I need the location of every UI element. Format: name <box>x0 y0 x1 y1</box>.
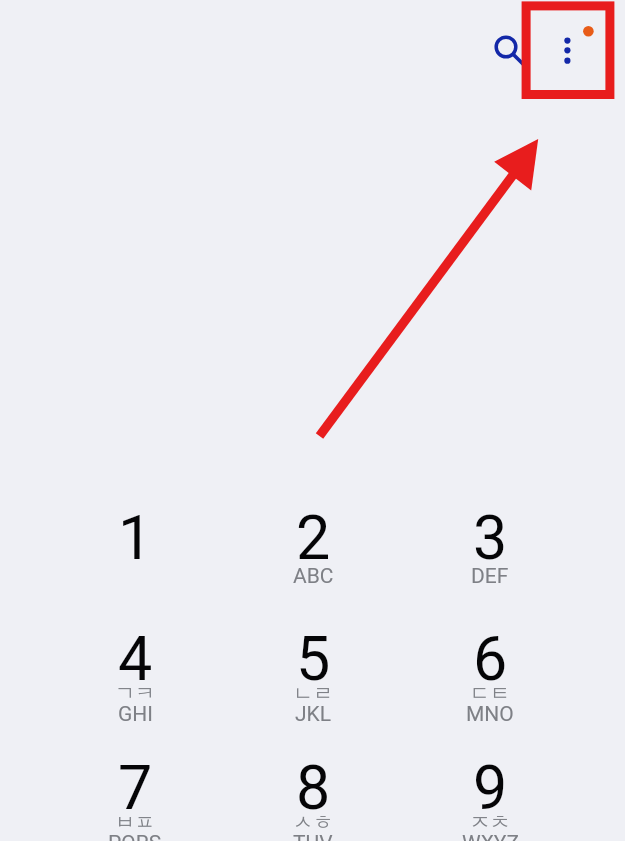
staticText: WXYZ <box>462 831 519 841</box>
button[interactable]: Dial 5 <box>229 607 397 722</box>
staticText: 5 <box>296 623 331 694</box>
staticText: ㅈㅊ <box>470 810 510 835</box>
staticText: GHI <box>118 702 153 727</box>
button[interactable]: Dial 4 <box>51 607 219 722</box>
staticText: DEF <box>471 564 509 589</box>
staticText: PQRS <box>108 831 162 841</box>
staticText: JKL <box>295 702 332 727</box>
staticText: 2 <box>296 502 331 573</box>
staticText: ㄷㅌ <box>470 681 510 706</box>
button[interactable]: Dial 6 <box>406 607 574 722</box>
button[interactable]: Dial 1 <box>51 486 219 601</box>
staticText: 4 <box>118 623 153 694</box>
staticText: ㅂㅍ <box>115 810 155 835</box>
button[interactable]: Dial 2 <box>229 486 397 601</box>
staticText: 3 <box>473 502 508 573</box>
staticText: ㄱㅋ <box>115 681 155 706</box>
staticText: 9 <box>473 752 508 823</box>
staticText: MNO <box>466 702 514 727</box>
staticText: TUV <box>293 831 333 841</box>
staticText: ㄴㄹ <box>293 681 333 706</box>
staticText: ㅅㅎ <box>293 810 333 835</box>
button[interactable]: Dial 3 <box>406 486 574 601</box>
staticText: 6 <box>473 623 508 694</box>
staticText: 7 <box>118 752 153 823</box>
button[interactable]: Dial 9 <box>406 736 574 841</box>
button[interactable]: Dial 7 <box>51 736 219 841</box>
staticText: 1 <box>118 502 153 573</box>
staticText: 8 <box>296 752 331 823</box>
button[interactable]: Search <box>484 25 528 69</box>
staticText: ABC <box>293 564 334 589</box>
button[interactable]: More options <box>544 16 596 68</box>
button[interactable]: Dial 8 <box>229 736 397 841</box>
